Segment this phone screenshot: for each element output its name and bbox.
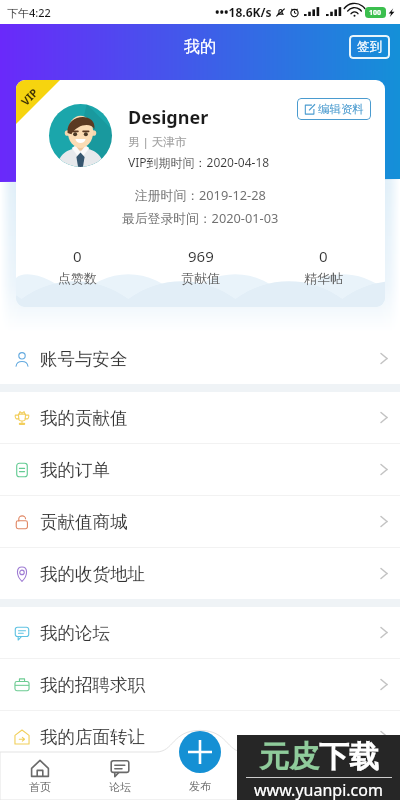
staticText: 发布 xyxy=(189,779,211,793)
staticText: 首页 xyxy=(29,780,51,794)
staticText: 男 | 天津市 xyxy=(128,134,187,150)
staticText: 我的 xyxy=(184,37,216,57)
staticText: 100 xyxy=(369,8,382,18)
staticText: 我的贡献值 xyxy=(40,407,128,429)
staticText: 编辑资料 xyxy=(318,102,364,116)
button[interactable]: 首页 xyxy=(0,752,80,800)
button[interactable]: 我的贡献值 xyxy=(0,392,400,443)
staticText: 我的收货地址 xyxy=(40,563,145,585)
staticText: 贡献值 xyxy=(181,270,220,286)
staticText: 账号与安全 xyxy=(40,348,128,370)
button[interactable]: 我的收货地址 xyxy=(0,548,400,599)
staticText: 我的论坛 xyxy=(40,622,110,644)
staticText: VIP到期时间：2020-04-18 xyxy=(128,154,270,170)
button[interactable]: 贡献值商城 xyxy=(0,496,400,547)
staticText: 最后登录时间：2020-01-03 xyxy=(122,209,279,226)
staticText: VIP xyxy=(17,84,41,108)
button[interactable]: 签到 xyxy=(349,35,390,59)
staticText: 元皮 xyxy=(259,738,319,776)
staticText: 论坛 xyxy=(109,780,131,794)
staticText: 我的订单 xyxy=(40,459,110,481)
staticText: 下午4:22 xyxy=(7,5,51,20)
staticText: 0 xyxy=(73,246,82,266)
staticText: www.yuanpi.com xyxy=(254,779,383,800)
staticText: 贡献值商城 xyxy=(40,511,128,533)
button[interactable]: 账号与安全 xyxy=(0,333,400,384)
staticText: 点赞数 xyxy=(58,270,97,286)
staticText: 下载 xyxy=(319,738,379,776)
button[interactable]: 我的订单 xyxy=(0,444,400,495)
staticText: Designer xyxy=(128,105,209,130)
button[interactable]: 我的 xyxy=(240,752,320,800)
staticText: 我的招聘求职 xyxy=(40,674,145,696)
button[interactable]: 我的店面转让 xyxy=(0,711,400,762)
button[interactable]: 我的论坛 xyxy=(0,607,400,658)
staticText: 我的店面转让 xyxy=(40,726,145,748)
staticText: 969 xyxy=(188,246,214,266)
staticText: 我的 xyxy=(269,780,291,794)
staticText: 注册时间：2019-12-28 xyxy=(135,186,266,203)
staticText: •••18.6K/s xyxy=(215,4,272,20)
button[interactable]: 发布 xyxy=(179,731,221,773)
staticText: 签到 xyxy=(357,39,382,55)
button[interactable]: 我的招聘求职 xyxy=(0,659,400,710)
staticText: 精华帖 xyxy=(304,270,343,286)
staticText: 0 xyxy=(319,246,328,266)
button[interactable]: 编辑资料 xyxy=(297,98,371,120)
button[interactable]: 论坛 xyxy=(80,752,160,800)
